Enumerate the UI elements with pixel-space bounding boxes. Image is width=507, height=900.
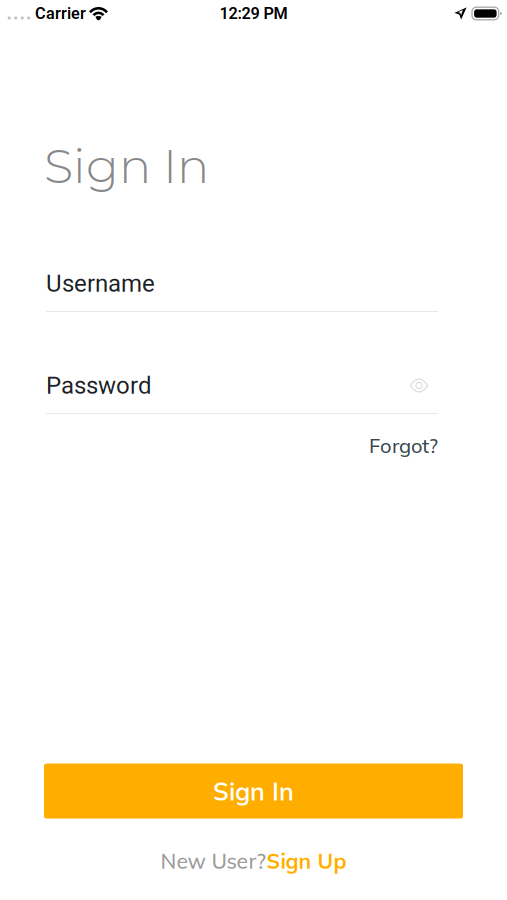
staticText: Username [46,269,155,297]
button[interactable]: Username [0,195,507,312]
staticText: Sign Up [266,848,346,874]
staticText: New User? [160,848,266,874]
button[interactable]: Forgot? [0,414,507,464]
button[interactable]: Show password [399,377,438,393]
staticText: Password [46,371,152,399]
button[interactable]: Password [0,312,507,414]
staticText: Carrier [35,4,86,23]
staticText: Sign In [44,136,209,195]
staticText: Forgot? [369,433,438,458]
staticText: 12:29 PM [219,4,287,23]
button[interactable]: Sign In [44,764,463,819]
button[interactable]: New User? [0,819,507,882]
staticText: Sign In [213,775,294,807]
